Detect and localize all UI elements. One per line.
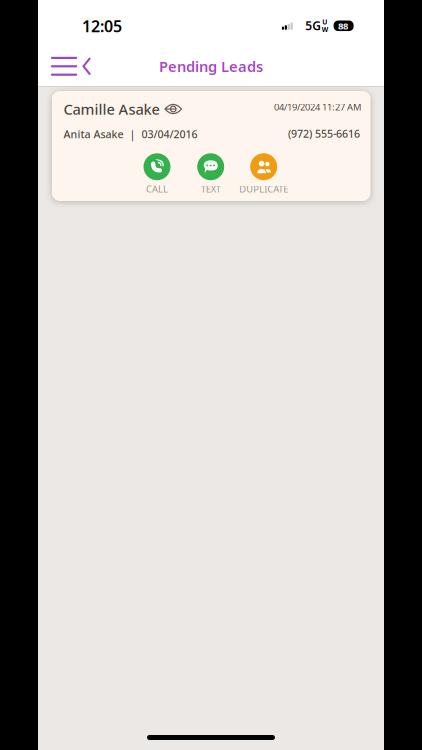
staticText: 5G — [305, 18, 321, 34]
staticText: Pending Leads — [159, 56, 263, 76]
staticText: DUPLICATE — [239, 183, 288, 195]
button[interactable]: DUPLICATE — [239, 153, 288, 195]
staticText: CALL — [146, 183, 168, 195]
staticText: U — [322, 18, 327, 26]
button[interactable]: CALL — [143, 153, 170, 195]
staticText: 04/19/2024 11:27 AM — [274, 101, 361, 113]
button[interactable]: TEXT — [197, 153, 224, 195]
button[interactable]: Menu — [48, 51, 94, 81]
staticText: 88 — [338, 20, 348, 32]
staticText: (972) 555-6616 — [288, 126, 360, 141]
staticText: W — [322, 25, 328, 34]
staticText: TEXT — [201, 183, 221, 195]
staticText: Camille Asake — [63, 99, 159, 119]
staticText: 12:05 — [82, 15, 122, 37]
staticText: Anita Asake | 03/04/2016 — [63, 127, 197, 141]
